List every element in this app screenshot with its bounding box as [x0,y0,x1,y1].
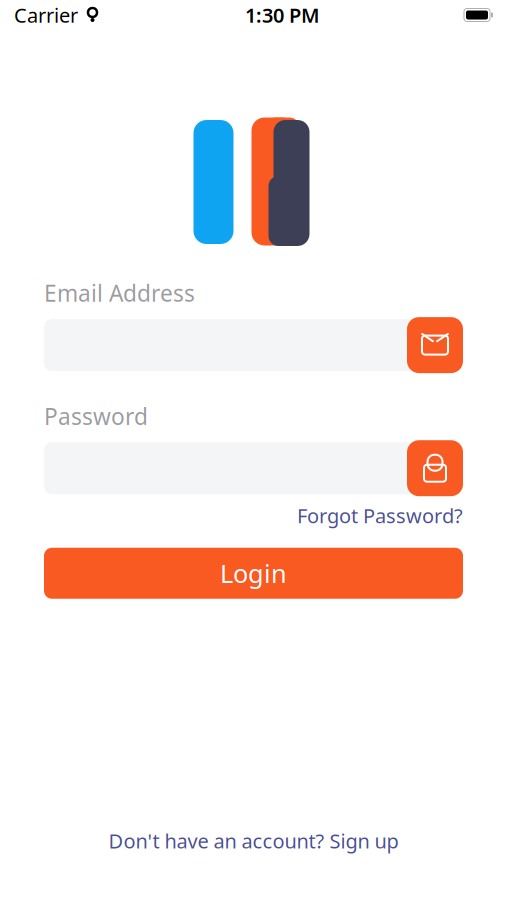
staticText: Forgot Password? [297,502,463,529]
button[interactable]: Email [407,317,463,373]
staticText: Carrier [14,2,78,28]
staticText: 1:30 PM [245,2,320,28]
button[interactable]: Don't have an account? Sign up [88,821,418,860]
staticText: Password [44,401,148,431]
button[interactable]: Login [44,548,463,599]
button[interactable]: Forgot Password? [297,496,463,531]
staticText: Login [220,556,287,590]
staticText: Don't have an account? Sign up [108,827,398,854]
button[interactable]: Password [407,440,463,496]
staticText: Email Address [44,278,195,308]
